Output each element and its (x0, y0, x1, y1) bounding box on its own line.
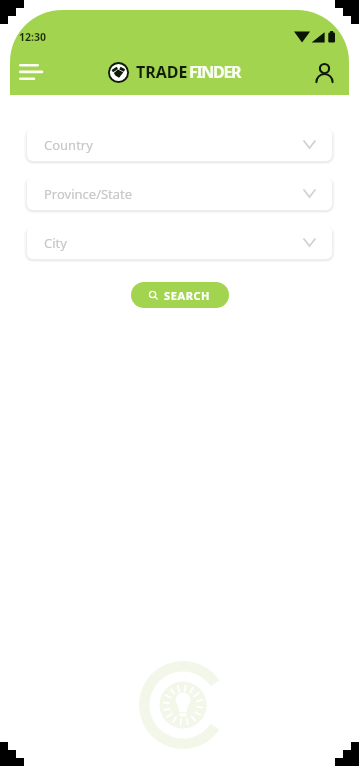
button[interactable]: Profile (304, 56, 334, 88)
staticText: FINDER (189, 61, 241, 83)
staticText: City (44, 234, 67, 252)
staticText: 12:30 (19, 30, 46, 44)
button[interactable]: SEARCH (131, 282, 229, 308)
staticText: Province/State (44, 185, 133, 203)
staticText: Country (44, 136, 93, 154)
button[interactable]: Country (27, 128, 332, 161)
button[interactable]: Menu (19, 56, 49, 88)
staticText: TRADE (136, 61, 188, 83)
button[interactable]: City (27, 226, 332, 259)
button[interactable]: Province/State (27, 177, 332, 210)
staticText: SEARCH (164, 288, 211, 303)
